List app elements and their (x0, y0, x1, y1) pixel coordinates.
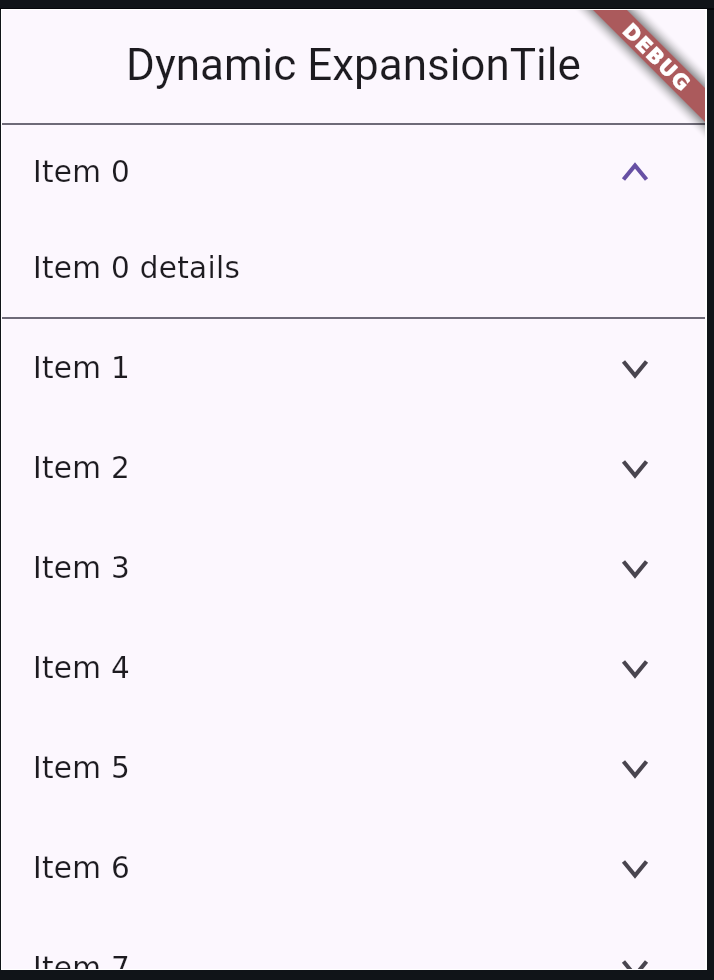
button[interactable]: Item 0 (2, 124, 705, 216)
staticText: Dynamic ExpansionTile (126, 39, 581, 91)
button[interactable]: Item 2 (2, 416, 705, 516)
button[interactable]: Item 3 (2, 516, 705, 616)
other: Expand Item (622, 360, 648, 377)
staticText: Item 1 (33, 351, 131, 385)
button[interactable]: Item 5 (2, 716, 705, 816)
other: Expand Item (622, 560, 648, 577)
staticText: Item 5 (33, 751, 131, 785)
staticText: Item 0 (33, 155, 131, 189)
button[interactable]: Item 4 (2, 616, 705, 716)
other: Expand Item (622, 460, 648, 477)
other: Expand Item (622, 760, 648, 777)
other: Collapse Item (622, 164, 648, 181)
button[interactable]: Item 6 (2, 816, 705, 916)
staticText: Item 7 (33, 951, 131, 969)
staticText: Item 4 (33, 651, 131, 685)
staticText: Item 0 details (33, 251, 241, 285)
other: Expand Item (622, 660, 648, 677)
other: Expand Item (622, 960, 648, 969)
button[interactable]: Item 7 (2, 916, 705, 969)
other: Expand Item (622, 860, 648, 877)
staticText: Item 3 (33, 551, 131, 585)
staticText: Item 2 (33, 451, 131, 485)
staticText: Item 6 (33, 851, 131, 885)
button[interactable]: Item 1 (2, 316, 705, 416)
